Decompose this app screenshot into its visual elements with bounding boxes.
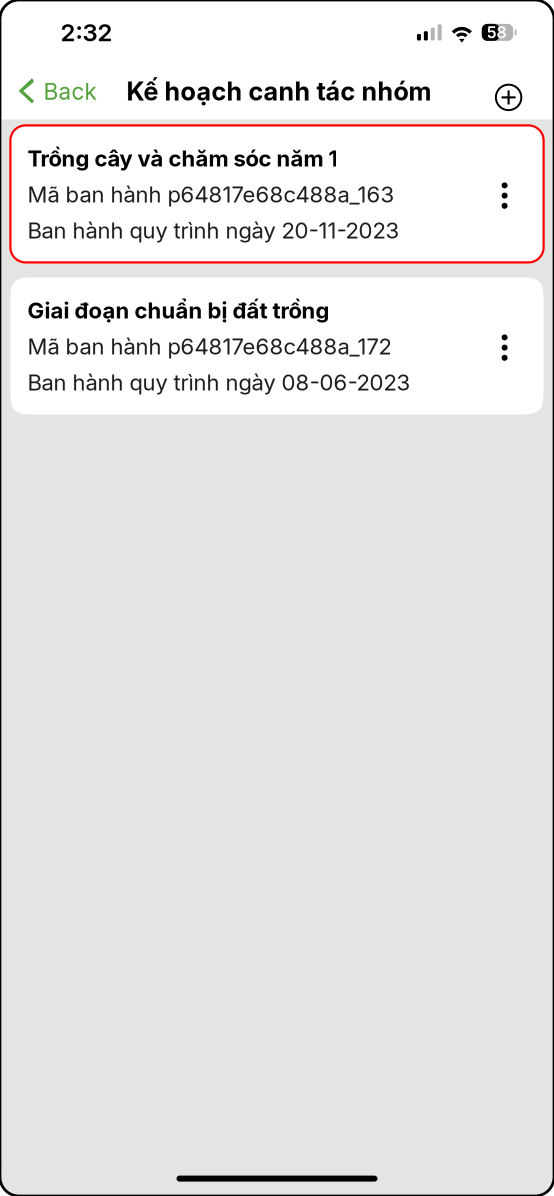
staticText: Giai đoạn chuẩn bị đất trồng — [27, 297, 329, 324]
staticText: Mã ban hành p64817e68c488a_163 — [27, 181, 394, 208]
button[interactable]: Trồng cây và chăm sóc năm 1 — [10, 125, 544, 262]
staticText: Kế hoạch canh tác nhóm — [126, 76, 431, 107]
staticText: Trồng cây và chăm sóc năm 1 — [27, 145, 337, 172]
button[interactable]: Add — [494, 65, 553, 117]
button[interactable]: Giai đoạn chuẩn bị đất trồng — [10, 277, 544, 414]
button[interactable]: Back — [1, 68, 96, 115]
staticText: 58 — [487, 23, 507, 42]
staticText: Ban hành quy trình ngày 20-11-2023 — [27, 217, 399, 244]
staticText: 2:32 — [60, 18, 112, 47]
staticText: Mã ban hành p64817e68c488a_172 — [27, 333, 391, 360]
staticText: Back — [43, 78, 96, 105]
staticText: Ban hành quy trình ngày 08-06-2023 — [27, 369, 410, 396]
